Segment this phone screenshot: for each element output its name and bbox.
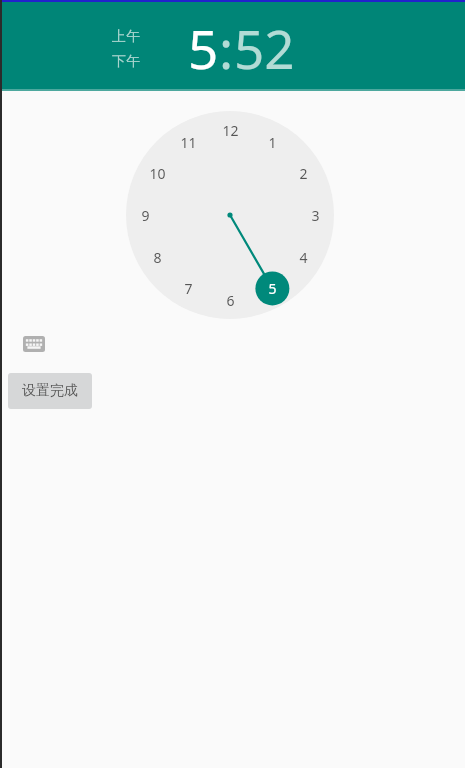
staticText: 上午 [112,28,140,46]
button[interactable]: 7 [171,271,205,305]
button[interactable]: 11 [171,125,205,159]
button[interactable]: 2 [286,156,320,190]
staticText: 1 [268,133,277,152]
staticText: 下午 [112,53,140,71]
staticText: 8 [153,248,162,267]
button[interactable]: 下午 [110,52,142,72]
button[interactable]: 3 [298,198,332,232]
staticText: 7 [184,279,193,298]
staticText: 11 [180,133,197,152]
staticText: 3 [311,206,320,225]
button[interactable]: 12 [213,113,247,147]
staticText: 2 [299,164,308,183]
button[interactable]: 1 [255,125,289,159]
button[interactable]: 10 [140,156,174,190]
button[interactable]: 5 [255,271,289,305]
staticText: 12 [222,121,239,140]
button[interactable]: 设置完成 [8,373,92,409]
button[interactable]: 9 [128,198,162,232]
button[interactable]: 8 [140,240,174,274]
button[interactable]: 上午 [110,27,142,47]
button[interactable]: 52 [234,12,295,84]
staticText: 5 [188,12,219,84]
button[interactable]: 6 [213,283,247,317]
staticText: 10 [149,164,166,183]
button[interactable]: 4 [286,240,320,274]
staticText: 9 [141,206,150,225]
button[interactable]: 5 [188,12,219,84]
staticText: 5 [268,279,277,298]
staticText: 4 [299,248,308,267]
staticText: : [219,12,234,84]
button[interactable]: Switch to keyboard input [16,330,52,358]
staticText: 设置完成 [22,382,78,400]
staticText: 6 [226,291,235,310]
staticText: 52 [234,12,295,84]
